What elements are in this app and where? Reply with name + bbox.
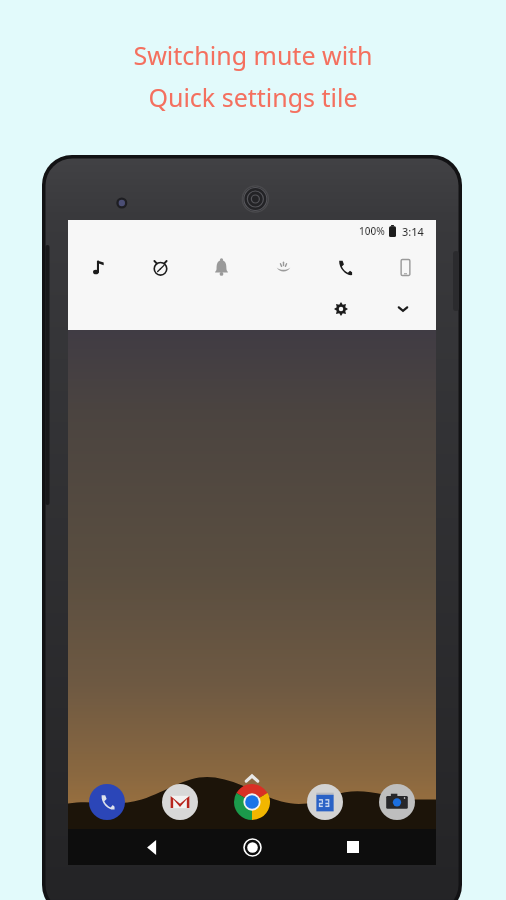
button[interactable]: Expand quick settings xyxy=(386,292,420,326)
staticText: 3:14 xyxy=(402,224,424,239)
button[interactable]: Calendar xyxy=(304,781,346,823)
staticText: 100% xyxy=(359,224,385,238)
button[interactable]: Camera xyxy=(376,781,418,823)
button[interactable]: Music xyxy=(82,250,116,284)
staticText: Quick settings tile xyxy=(148,80,358,114)
button[interactable]: Recent apps xyxy=(336,830,370,864)
staticText: Switching mute with xyxy=(133,38,373,72)
button[interactable]: Device xyxy=(388,250,422,284)
button[interactable]: Alarm xyxy=(143,250,177,284)
button[interactable]: Gmail xyxy=(159,781,201,823)
button[interactable]: Open app drawer xyxy=(243,770,261,788)
button[interactable]: Chrome xyxy=(231,781,273,823)
button[interactable]: Vibrate xyxy=(266,250,300,284)
button[interactable]: Settings xyxy=(324,292,358,326)
button[interactable]: Back xyxy=(135,830,169,864)
button[interactable]: Home xyxy=(235,830,269,864)
button[interactable]: Phone xyxy=(86,781,128,823)
button[interactable]: Ring xyxy=(204,250,238,284)
button[interactable]: Call xyxy=(327,250,361,284)
